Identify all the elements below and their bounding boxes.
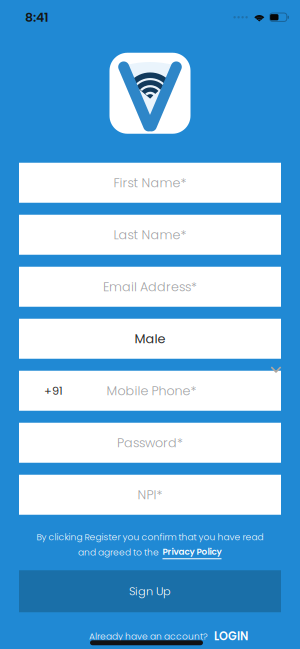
button[interactable]: Password*	[19, 423, 281, 463]
staticText: Sign Up	[129, 583, 171, 599]
staticText: 8:41	[25, 8, 49, 26]
staticText: LOGIN	[214, 628, 248, 644]
button[interactable]: Email Address*	[19, 267, 281, 307]
button[interactable]: Sign Up	[0, 570, 300, 612]
button[interactable]: Privacy Policy	[162, 545, 222, 559]
button[interactable]: Male	[19, 319, 281, 359]
button[interactable]: +91	[19, 371, 281, 411]
staticText: Male	[134, 330, 165, 348]
staticText: Mobile Phone*	[106, 382, 196, 400]
button[interactable]: First Name*	[19, 163, 281, 203]
staticText: +91	[44, 383, 63, 399]
button[interactable]: Already have an account?	[89, 628, 248, 644]
staticText: Already have an account?	[89, 630, 208, 643]
staticText: and agreed to the	[78, 546, 159, 559]
button[interactable]: NPI*	[19, 475, 281, 515]
staticText: Password*	[117, 434, 183, 452]
staticText: Last Name*	[113, 226, 186, 244]
staticText: By clicking Register you confirm that yo…	[36, 531, 263, 543]
staticText: NPI*	[137, 486, 162, 504]
staticText: Privacy Policy	[162, 545, 221, 558]
button[interactable]: Last Name*	[19, 215, 281, 255]
staticText: First Name*	[113, 174, 186, 192]
staticText: Email Address*	[103, 278, 197, 296]
